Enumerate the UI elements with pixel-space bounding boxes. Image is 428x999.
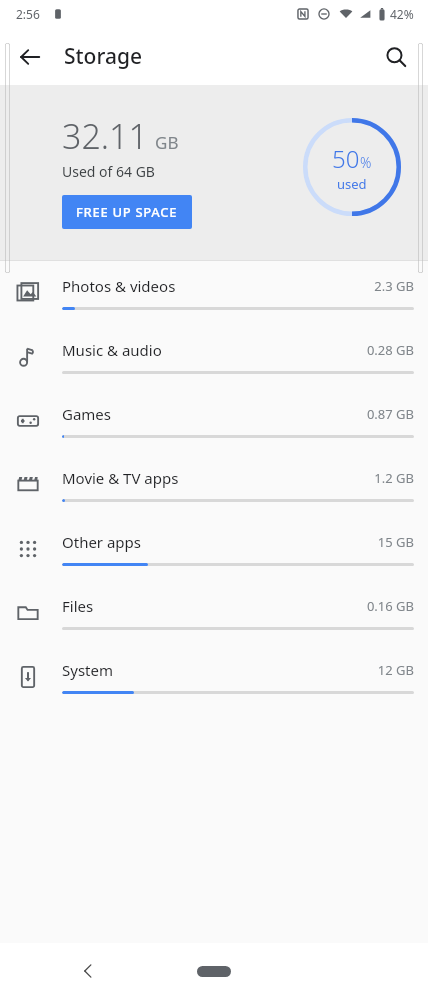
staticText: Other apps — [62, 532, 377, 552]
staticText: 12 GB — [377, 661, 414, 679]
staticText: Music & audio — [62, 340, 366, 360]
button[interactable]: FREE UP SPACE — [62, 195, 192, 229]
button[interactable]: Home — [197, 966, 231, 977]
button[interactable]: Files — [0, 581, 428, 645]
button[interactable]: Back — [6, 33, 54, 81]
staticText: Storage — [64, 42, 142, 71]
staticText: Photos & videos — [62, 276, 374, 296]
staticText: 0.16 GB — [366, 597, 414, 615]
staticText: 50 — [332, 142, 360, 175]
button[interactable]: Photos & videos — [0, 261, 428, 325]
staticText: Files — [62, 596, 366, 616]
button[interactable]: Movie & TV apps — [0, 453, 428, 517]
staticText: 0.87 GB — [366, 405, 414, 423]
button[interactable]: Music & audio — [0, 325, 428, 389]
button[interactable]: Other apps — [0, 517, 428, 581]
staticText: System — [62, 660, 377, 680]
staticText: FREE UP SPACE — [76, 203, 178, 221]
staticText: Games — [62, 404, 366, 424]
staticText: 32.11 — [62, 113, 148, 159]
staticText: 0.28 GB — [366, 341, 414, 359]
staticText: 1.2 GB — [374, 469, 414, 487]
staticText: 2.3 GB — [374, 277, 414, 295]
button[interactable]: Back — [68, 951, 108, 991]
staticText: Used of 64 GB — [62, 162, 155, 181]
staticText: 15 GB — [377, 533, 414, 551]
staticText: 2:56 — [16, 6, 40, 22]
staticText: Movie & TV apps — [62, 468, 374, 488]
button[interactable]: Games — [0, 389, 428, 453]
staticText: used — [337, 175, 367, 193]
staticText: % — [360, 153, 372, 172]
button[interactable]: System — [0, 645, 428, 709]
staticText: GB — [155, 131, 179, 154]
staticText: 42% — [390, 6, 414, 22]
button[interactable]: Search — [372, 33, 420, 81]
